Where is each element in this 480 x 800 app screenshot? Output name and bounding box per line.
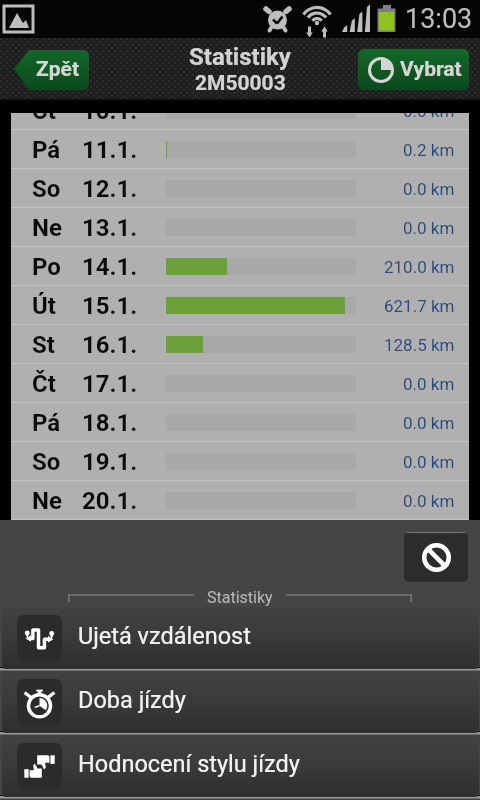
staticText: 10.1.: [82, 113, 138, 125]
staticText: 16.1.: [82, 331, 138, 359]
staticText: 0.2 km: [403, 140, 455, 160]
staticText: Doba jízdy: [78, 686, 186, 714]
staticText: Zpět: [36, 57, 80, 82]
button[interactable]: Hodnocení stylu jízdy: [2, 735, 479, 797]
button[interactable]: So: [11, 442, 469, 481]
button[interactable]: Po: [11, 247, 469, 286]
staticText: Po: [32, 253, 61, 281]
button[interactable]: Út: [11, 286, 469, 325]
staticText: So: [32, 175, 61, 203]
staticText: 12.1.: [82, 175, 138, 203]
staticText: Statistiky: [207, 588, 273, 607]
button[interactable]: Ne: [11, 481, 469, 520]
staticText: 621.7 km: [384, 296, 455, 316]
staticText: 0.0 km: [403, 218, 455, 238]
button[interactable]: Pá: [11, 130, 469, 169]
staticText: 13.1.: [82, 214, 138, 242]
staticText: 19.1.: [82, 448, 138, 476]
staticText: 17.1.: [82, 370, 138, 398]
staticText: 20.1.: [82, 487, 138, 515]
staticText: Pá: [32, 409, 61, 437]
staticText: 0.0 km: [403, 374, 455, 394]
button[interactable]: Ne: [11, 208, 469, 247]
staticText: 0.0 km: [403, 179, 455, 199]
staticText: Čt: [32, 113, 56, 125]
staticText: 0.0 km: [403, 452, 455, 472]
button[interactable]: Čt: [11, 364, 469, 403]
button[interactable]: So: [11, 169, 469, 208]
button[interactable]: St: [11, 325, 469, 364]
staticText: So: [32, 448, 61, 476]
button[interactable]: Čt: [11, 113, 469, 130]
staticText: 128.5 km: [384, 335, 455, 355]
staticText: 15.1.: [82, 292, 138, 320]
button[interactable]: Zrušit: [404, 532, 468, 582]
staticText: 14.1.: [82, 253, 138, 281]
staticText: 0.0 km: [403, 413, 455, 433]
staticText: 0.0 km: [403, 491, 455, 511]
staticText: 2M50003: [195, 71, 286, 96]
button[interactable]: Vybrat: [358, 49, 469, 90]
staticText: Ujetá vzdálenost: [78, 622, 251, 650]
staticText: 13:03: [405, 3, 473, 35]
staticText: 210.0 km: [384, 257, 455, 277]
staticText: Pá: [32, 136, 61, 164]
staticText: Statistiky: [189, 43, 291, 71]
staticText: Út: [32, 292, 56, 320]
staticText: 0.0 km: [403, 113, 455, 121]
staticText: 11.1.: [82, 136, 138, 164]
button[interactable]: Zpět: [14, 48, 89, 90]
staticText: St: [32, 331, 55, 359]
staticText: Ne: [32, 487, 62, 515]
button[interactable]: Ujetá vzdálenost: [2, 607, 479, 669]
staticText: Vybrat: [400, 57, 462, 82]
staticText: Ne: [32, 214, 62, 242]
staticText: 18.1.: [82, 409, 138, 437]
button[interactable]: Doba jízdy: [2, 671, 479, 733]
button[interactable]: Pá: [11, 403, 469, 442]
staticText: Čt: [32, 370, 56, 398]
staticText: Hodnocení stylu jízdy: [78, 750, 300, 778]
